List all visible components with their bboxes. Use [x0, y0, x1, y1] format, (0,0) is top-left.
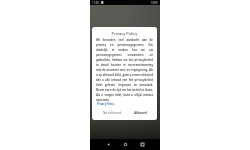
staticText: We besteden veel aandacht aan de privacy…	[96, 38, 153, 102]
button[interactable]: Akkoord	[126, 107, 154, 119]
staticText: Privacy Policy	[97, 102, 115, 105]
button[interactable]: Niet akkoord	[98, 107, 126, 119]
button[interactable]: Back	[104, 140, 113, 149]
staticText: Niet akkoord	[103, 111, 122, 115]
button[interactable]: Home	[121, 140, 130, 149]
button[interactable]: Recents	[138, 140, 147, 149]
button[interactable]: Privacy Policy	[97, 102, 115, 105]
staticText: Akkoord	[134, 111, 147, 115]
staticText: 100%	[151, 1, 158, 5]
staticText: 11:05	[92, 1, 99, 5]
staticText: Privacy Policy	[92, 31, 157, 36]
